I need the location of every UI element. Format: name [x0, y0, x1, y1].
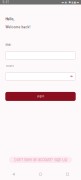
staticText: Welcome back!: [6, 25, 31, 29]
staticText: Login: [36, 95, 44, 98]
button[interactable]: Login: [5, 92, 76, 101]
button[interactable]: Recent apps: [54, 170, 81, 178]
staticText: Don't have an account? Sign Up: [14, 157, 67, 162]
staticText: Password: [5, 65, 13, 67]
staticText: ▬ ▲ ● ▮ ▮▮ ▬: [62, 1, 79, 4]
staticText: 9:41: [2, 1, 8, 4]
button[interactable]: Home: [27, 170, 54, 178]
staticText: Email: [5, 44, 11, 46]
button[interactable]: Don't have an account? Sign Up: [9, 157, 72, 163]
staticText: Hello,: [6, 17, 15, 21]
button[interactable]: Back: [0, 170, 27, 178]
